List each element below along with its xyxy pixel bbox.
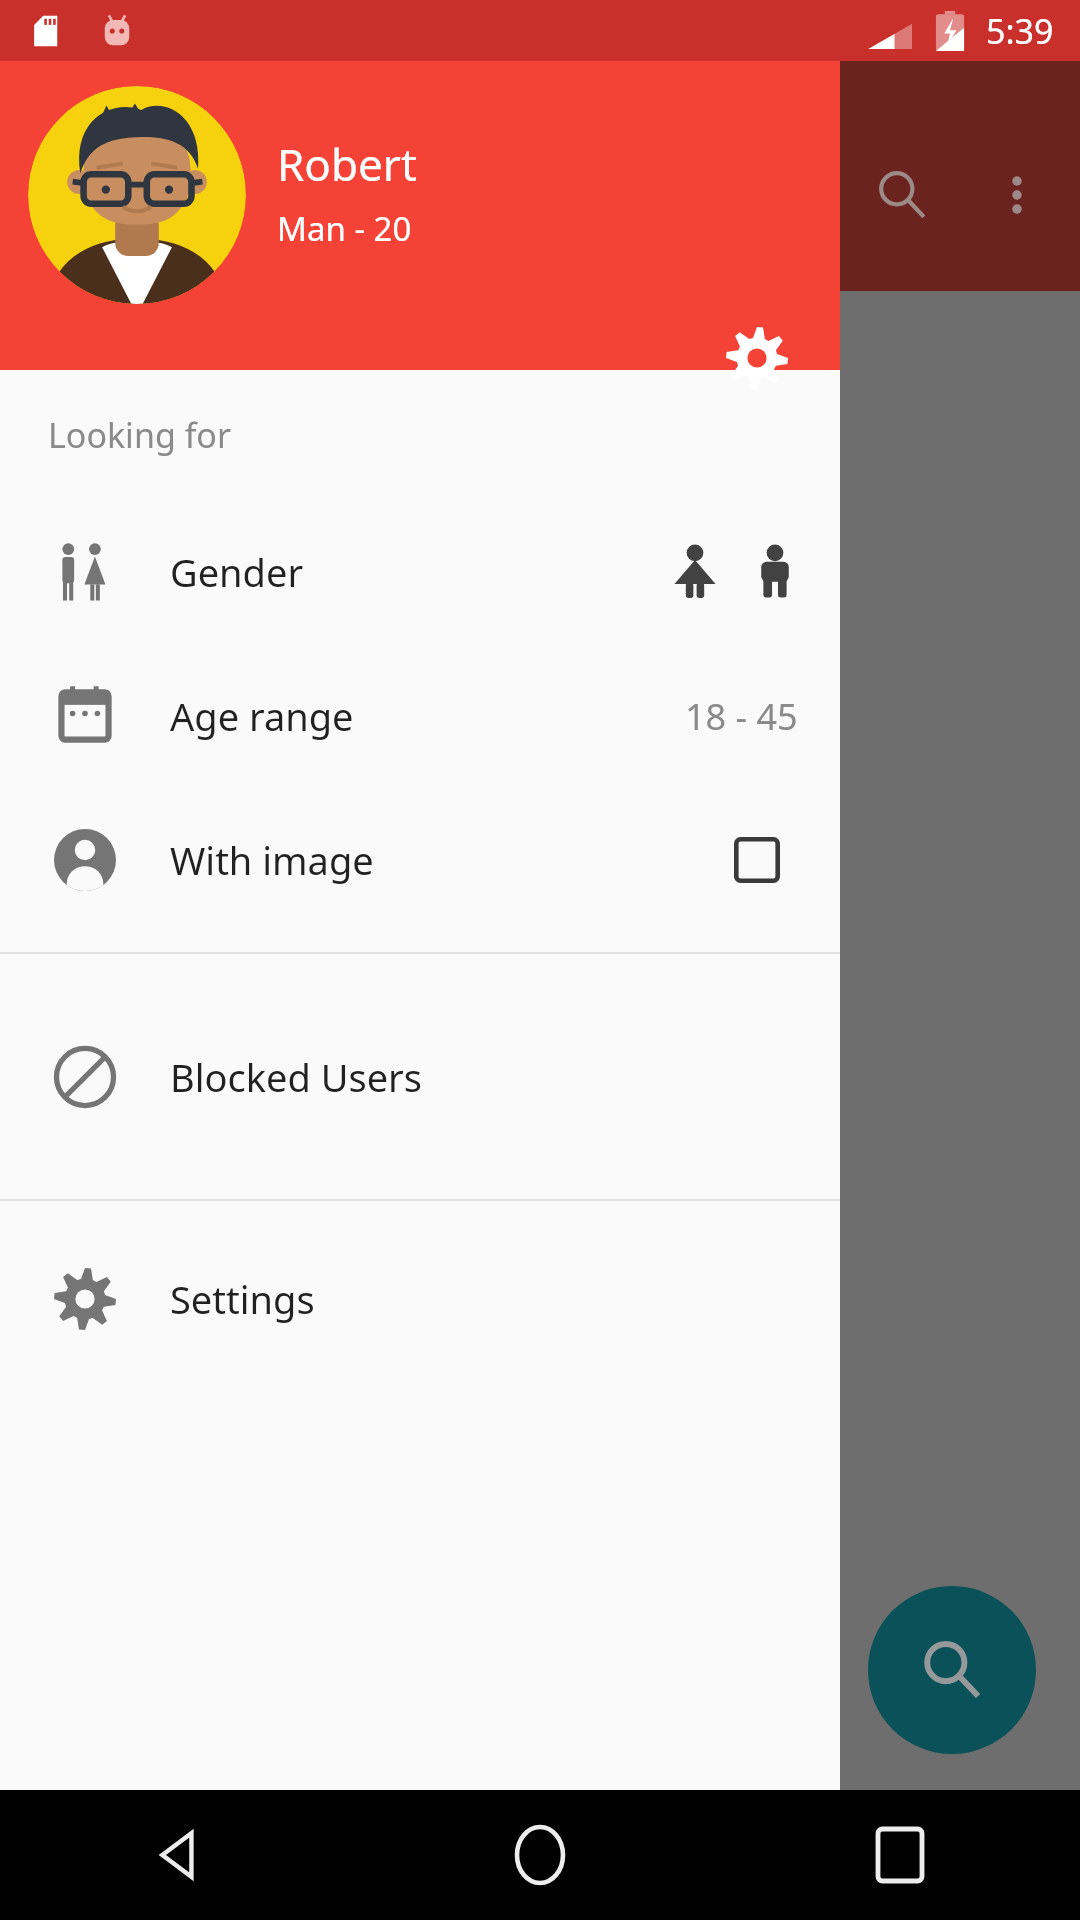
staticText: Looking for xyxy=(48,412,231,458)
button[interactable]: Home xyxy=(360,1790,720,1920)
staticText: With image xyxy=(170,834,374,886)
staticText: Age range xyxy=(170,690,354,742)
button[interactable]: Back xyxy=(0,1790,360,1920)
staticText: 18 - 45 xyxy=(685,692,798,741)
staticText: Man - 20 xyxy=(277,206,412,251)
staticText: Gender xyxy=(170,546,304,598)
staticText: Blocked Users xyxy=(170,1051,423,1103)
button[interactable]: Search xyxy=(860,153,944,237)
staticText: Robert xyxy=(277,134,417,194)
staticText: 5:39 xyxy=(986,8,1054,54)
staticText: Settings xyxy=(170,1273,315,1325)
button[interactable]: Age range xyxy=(0,644,840,788)
button[interactable]: More options xyxy=(975,153,1059,237)
button[interactable]: Settings xyxy=(0,1201,840,1396)
button[interactable]: Settings xyxy=(710,311,804,405)
button[interactable]: With image xyxy=(0,788,840,932)
button[interactable] xyxy=(28,86,246,304)
button[interactable]: Blocked Users xyxy=(0,954,840,1199)
button[interactable]: Gender xyxy=(0,500,840,644)
button[interactable]: Recents xyxy=(720,1790,1080,1920)
button[interactable]: Search xyxy=(868,1586,1036,1754)
